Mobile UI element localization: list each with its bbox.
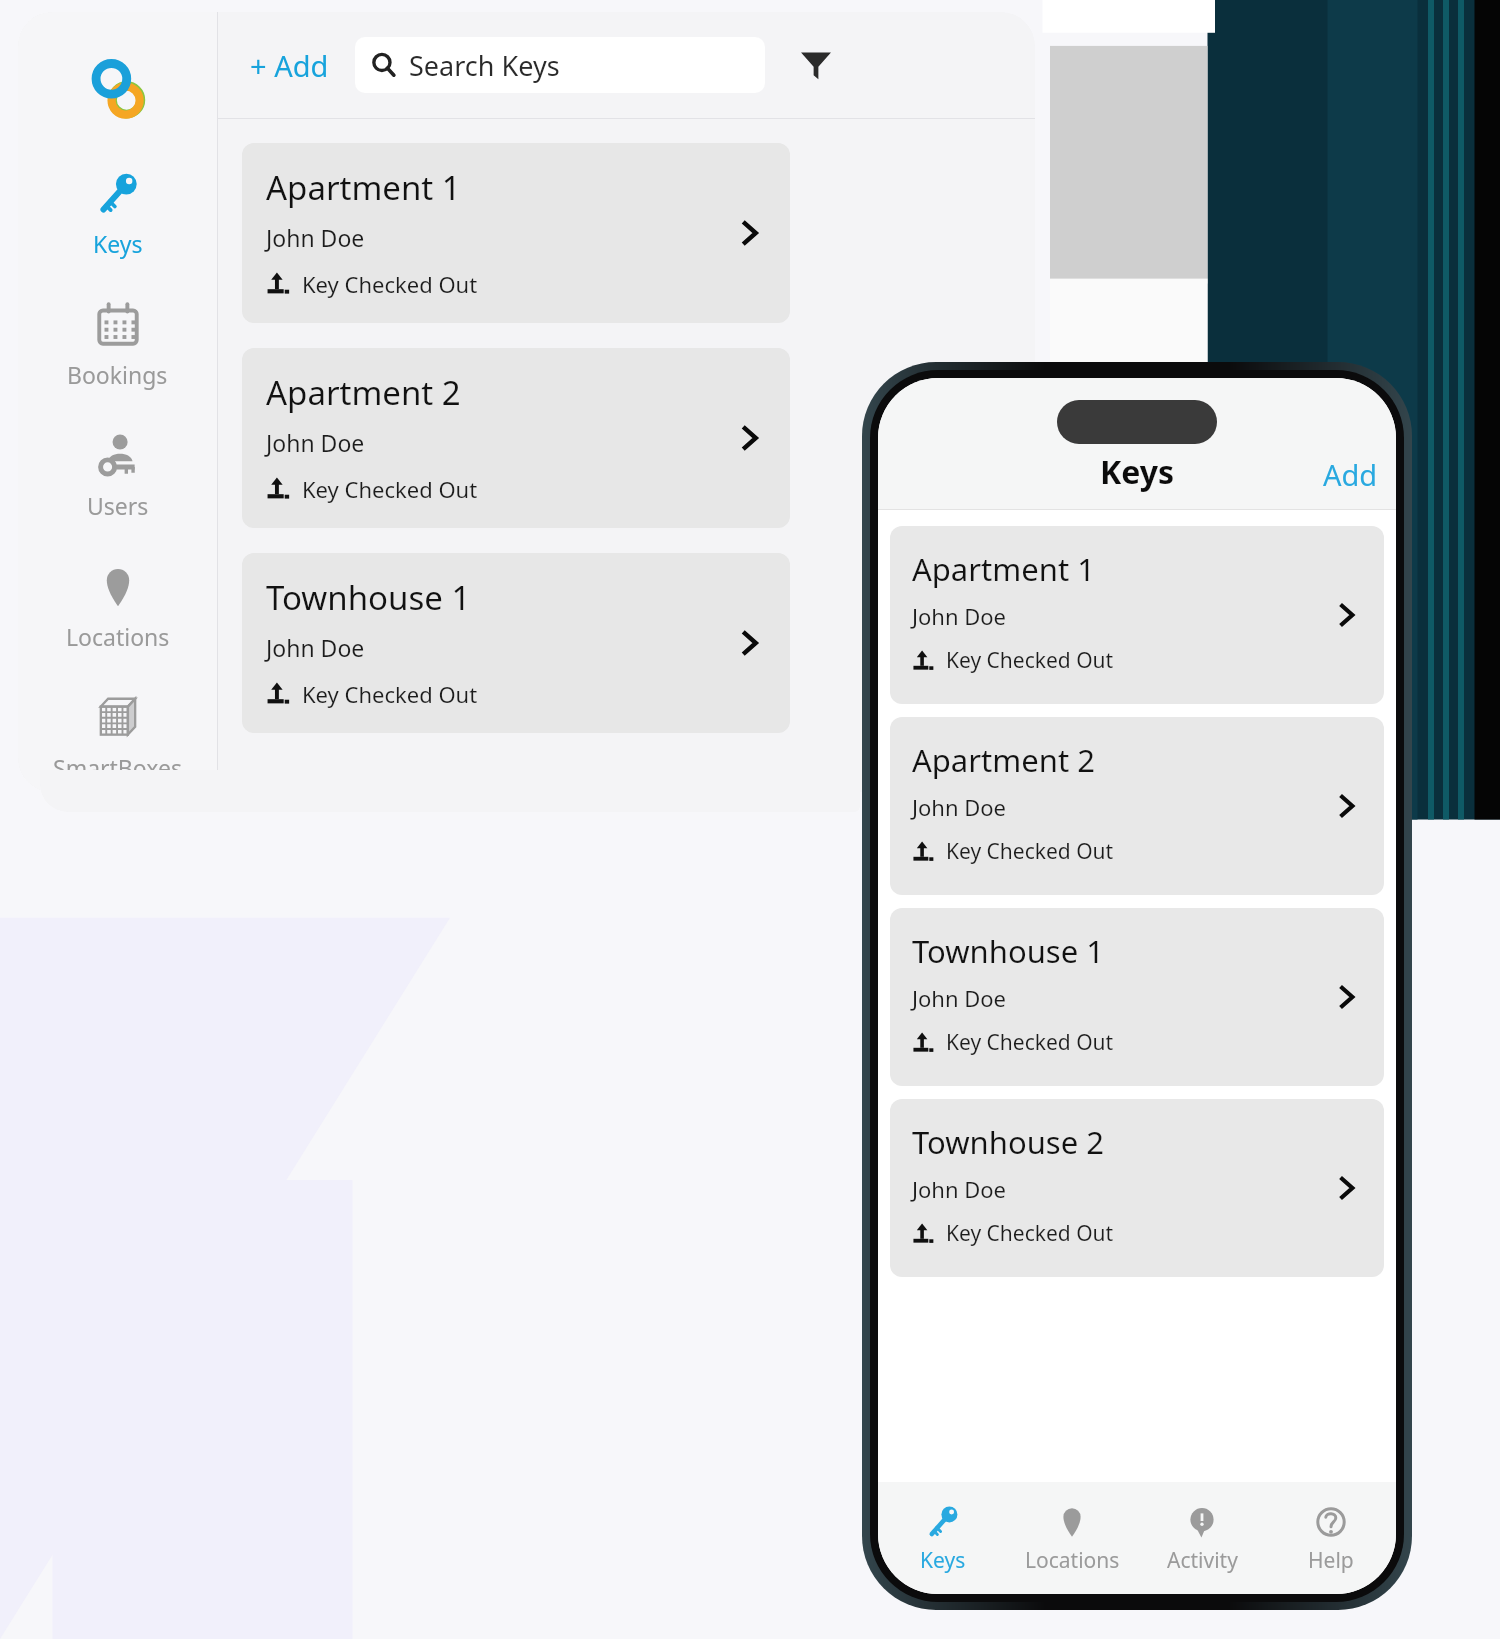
staticText: Key Checked Out [302, 269, 478, 299]
staticText: Townhouse 1 [912, 930, 1104, 972]
staticText: Apartment 2 [266, 370, 461, 415]
button[interactable]: Keys [1090, 448, 1185, 496]
button[interactable]: Apartment 2 [242, 348, 790, 528]
staticText: Townhouse 1 [266, 575, 471, 620]
button[interactable]: Townhouse 1 [890, 908, 1384, 1086]
staticText: Activity [1167, 1546, 1238, 1575]
staticText: Apartment 2 [912, 739, 1095, 781]
button[interactable]: Activity [1138, 1496, 1266, 1581]
staticText: Key Checked Out [946, 1028, 1114, 1057]
staticText: Users [87, 490, 149, 521]
staticText: John Doe [912, 983, 1007, 1013]
staticText: John Doe [912, 1174, 1007, 1204]
staticText: Keys [1100, 450, 1175, 494]
staticText: John Doe [912, 601, 1007, 631]
staticText: Search Keys [409, 47, 560, 84]
button[interactable]: Apartment 1 [890, 526, 1384, 704]
staticText: Add [1323, 455, 1378, 494]
staticText: Key Checked Out [946, 837, 1114, 866]
button[interactable]: Search Keys [355, 37, 765, 93]
staticText: Keys [920, 1546, 966, 1575]
staticText: Key Checked Out [946, 1219, 1114, 1248]
staticText: John Doe [266, 427, 365, 458]
button[interactable]: Bookings [18, 297, 217, 392]
button[interactable]: Help [1267, 1496, 1395, 1581]
button[interactable]: Apartment 2 [890, 717, 1384, 895]
staticText: Townhouse 2 [912, 1121, 1104, 1163]
staticText: John Doe [266, 632, 365, 663]
button[interactable]: Filter [793, 42, 839, 88]
staticText: SmartBoxes [53, 752, 182, 783]
staticText: Key Checked Out [302, 474, 478, 504]
staticText: Key Checked Out [946, 646, 1114, 675]
button[interactable]: Apartment 1 [242, 143, 790, 323]
staticText: Locations [1025, 1546, 1120, 1575]
button[interactable]: + Add [244, 40, 335, 91]
button[interactable]: Locations [18, 559, 217, 654]
button[interactable]: SmartBoxes [18, 690, 217, 785]
button[interactable]: Townhouse 1 [242, 553, 790, 733]
button[interactable]: Add [1305, 453, 1396, 496]
staticText: Bookings [67, 359, 168, 390]
staticText: Apartment 1 [266, 165, 461, 210]
button[interactable]: Keys [879, 1496, 1007, 1581]
staticText: Keys [93, 228, 143, 259]
staticText: Help [1308, 1546, 1354, 1575]
staticText: + Add [250, 46, 329, 85]
staticText: Apartment 1 [912, 548, 1095, 590]
button[interactable]: Locations [1008, 1496, 1136, 1581]
button[interactable]: Keys [18, 166, 217, 261]
button[interactable]: Users [18, 428, 217, 523]
staticText: John Doe [266, 222, 365, 253]
staticText: Locations [66, 621, 170, 652]
button[interactable]: Townhouse 2 [890, 1099, 1384, 1277]
staticText: Key Checked Out [302, 679, 478, 709]
staticText: John Doe [912, 792, 1007, 822]
